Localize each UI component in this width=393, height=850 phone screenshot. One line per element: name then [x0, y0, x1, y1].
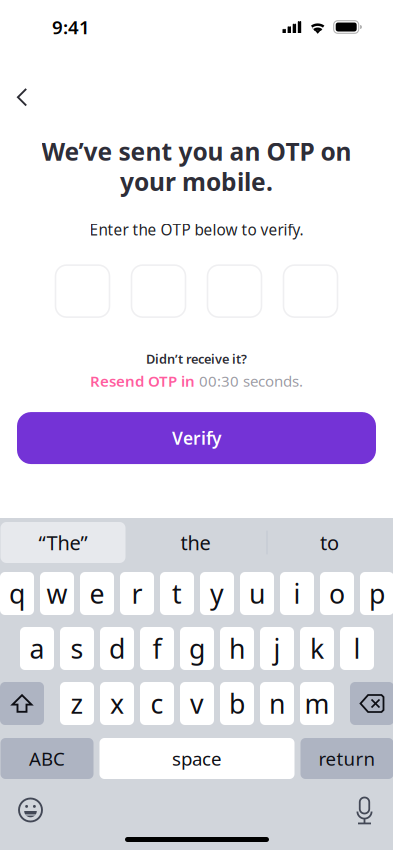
button[interactable]: z [60, 682, 94, 725]
button[interactable]: m [300, 682, 334, 725]
staticText: return [318, 746, 375, 771]
staticText: k [310, 631, 324, 666]
staticText: the [180, 529, 210, 556]
button[interactable]: p [360, 572, 393, 615]
staticText: z [70, 686, 83, 721]
button[interactable]: g [180, 627, 214, 670]
button[interactable]: a [20, 627, 54, 670]
staticText: We’ve sent you an OTP on [41, 134, 351, 168]
button[interactable]: Emoji [9, 789, 51, 831]
button[interactable]: h [220, 627, 254, 670]
button[interactable]: w [40, 572, 74, 615]
button[interactable]: o [320, 572, 354, 615]
staticText: v [190, 686, 204, 721]
staticText: s [70, 631, 83, 666]
staticText: a [29, 631, 44, 666]
staticText: b [229, 686, 245, 721]
button[interactable]: n [260, 682, 294, 725]
button[interactable]: the [125, 522, 265, 563]
staticText: x [110, 686, 124, 721]
staticText: d [109, 631, 125, 666]
staticText: l [353, 631, 360, 666]
button[interactable]: i [280, 572, 314, 615]
staticText: 9:41 [52, 15, 90, 39]
button[interactable]: space [99, 738, 294, 779]
staticText: your mobile. [120, 165, 273, 198]
button[interactable]: c [140, 682, 174, 725]
staticText: Enter the OTP below to verify. [89, 219, 303, 240]
staticText: f [152, 631, 161, 666]
button[interactable]: f [140, 627, 174, 670]
staticText: w [46, 576, 67, 611]
button[interactable]: Back [7, 78, 37, 116]
staticText: t [172, 576, 182, 611]
button[interactable]: q [0, 572, 34, 615]
staticText: y [210, 576, 224, 611]
button[interactable]: b [220, 682, 254, 725]
button[interactable]: Verify [17, 412, 376, 464]
button[interactable]: r [120, 572, 154, 615]
staticText: e [89, 576, 104, 611]
button[interactable]: j [260, 627, 294, 670]
button[interactable]: l [340, 627, 374, 670]
staticText: h [229, 631, 245, 666]
button[interactable]: Dictate [344, 788, 384, 832]
button[interactable]: “The” [0, 522, 125, 563]
button[interactable]: d [100, 627, 134, 670]
staticText: p [369, 576, 385, 611]
button[interactable]: Delete [350, 682, 393, 725]
staticText: u [249, 576, 265, 611]
staticText: “The” [38, 529, 87, 556]
staticText: j [273, 631, 280, 666]
button[interactable]: ABC [0, 738, 93, 779]
button[interactable]: u [240, 572, 274, 615]
staticText: to [320, 529, 339, 556]
button[interactable]: s [60, 627, 94, 670]
staticText: Verify [172, 427, 221, 450]
staticText: Resend OTP in [90, 370, 199, 391]
staticText: c [150, 686, 163, 721]
button[interactable]: return [300, 738, 393, 779]
staticText: ABC [29, 746, 65, 771]
button[interactable]: to [265, 522, 393, 563]
staticText: m [304, 686, 329, 721]
staticText: q [9, 576, 25, 611]
staticText: space [172, 746, 222, 771]
button[interactable]: k [300, 627, 334, 670]
staticText: n [269, 686, 285, 721]
button[interactable]: x [100, 682, 134, 725]
staticText: o [329, 576, 345, 611]
staticText: Didn’t receive it? [146, 350, 247, 367]
staticText: 00:30 seconds. [199, 370, 303, 391]
staticText: i [293, 576, 300, 611]
button[interactable]: t [160, 572, 194, 615]
staticText: r [131, 576, 142, 611]
button[interactable]: Shift [0, 682, 44, 725]
button[interactable]: y [200, 572, 234, 615]
staticText: g [189, 631, 205, 666]
button[interactable]: e [80, 572, 114, 615]
button[interactable]: v [180, 682, 214, 725]
